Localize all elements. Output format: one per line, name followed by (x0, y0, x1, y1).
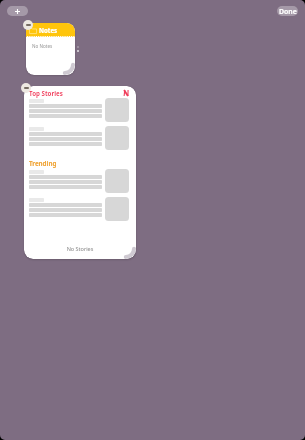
staticText: Done (279, 7, 297, 16)
button[interactable]: Notes (26, 23, 75, 75)
button[interactable]: Remove widget (23, 20, 33, 30)
staticText: No Stories (30, 245, 130, 252)
button[interactable]: Top Stories (24, 86, 136, 259)
staticText: Notes (39, 26, 58, 34)
button[interactable]: Remove widget (21, 83, 31, 93)
staticText: Top Stories (29, 89, 63, 97)
staticText: Trending (29, 159, 57, 167)
staticText: No Notes (32, 43, 53, 49)
button[interactable]: Done (277, 6, 298, 16)
button[interactable]: Add widget (7, 6, 28, 16)
